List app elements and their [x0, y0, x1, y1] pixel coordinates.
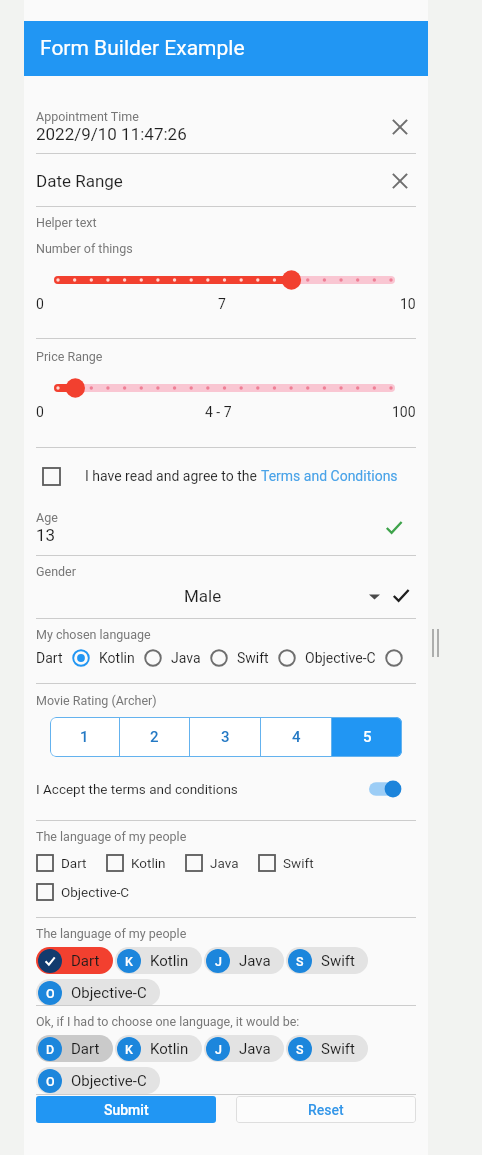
staticText: Java	[210, 855, 239, 871]
button[interactable]: Select Dart	[72, 649, 90, 667]
staticText: Reset	[308, 1102, 344, 1118]
button[interactable]: S	[286, 947, 368, 974]
staticText: Dart	[71, 1040, 100, 1058]
staticText: Java	[239, 1040, 271, 1058]
staticText: O	[46, 986, 55, 1001]
staticText: Swift	[321, 952, 355, 970]
staticText: 4	[292, 728, 301, 746]
staticText: Dart	[71, 952, 100, 970]
button[interactable]: O	[36, 979, 160, 1006]
staticText: Kotlin	[99, 650, 135, 666]
button[interactable]: I have read and agree to the	[36, 448, 416, 504]
staticText: Appointment Time	[36, 109, 139, 124]
button[interactable]: 5	[332, 717, 402, 757]
staticText: Kotlin	[150, 1040, 189, 1058]
staticText: Gender	[36, 564, 76, 579]
staticText: Swift	[237, 650, 269, 666]
staticText: I have read and agree to the	[85, 468, 261, 484]
staticText: Number of things	[36, 241, 133, 256]
button[interactable]: Clear date range	[384, 165, 416, 197]
staticText: Swift	[283, 855, 314, 871]
staticText: 100	[392, 404, 416, 420]
button[interactable]: J	[204, 947, 284, 974]
button[interactable]: 3	[190, 717, 260, 757]
button[interactable]: Resize panel	[430, 629, 440, 657]
button[interactable]: 2	[120, 717, 189, 757]
button[interactable]: S	[286, 1035, 368, 1062]
button[interactable]: Select Swift	[278, 649, 296, 667]
button[interactable]: Select Objective-C	[385, 649, 403, 667]
staticText: 10	[400, 296, 416, 312]
staticText: The language of my people	[36, 926, 187, 941]
staticText: 4 - 7	[205, 404, 232, 420]
staticText: Price Range	[36, 349, 103, 364]
staticText: J	[215, 1042, 222, 1057]
button[interactable]: Reset	[236, 1096, 416, 1123]
button[interactable]: 4	[261, 717, 331, 757]
button[interactable]: Dart	[36, 947, 113, 974]
button[interactable]: Submit	[36, 1096, 216, 1123]
button[interactable]: Java	[185, 854, 239, 872]
staticText: 3	[221, 728, 230, 746]
button[interactable]: Accept the terms and conditions toggle	[369, 777, 416, 801]
button[interactable]: Objective-C	[36, 883, 130, 901]
staticText: K	[125, 954, 133, 969]
staticText: 0	[36, 296, 44, 312]
staticText: Kotlin	[131, 855, 166, 871]
staticText: O	[46, 1074, 55, 1089]
staticText: 7	[218, 296, 226, 312]
staticText: Terms and Conditions	[261, 468, 398, 484]
button[interactable]: Swift	[258, 854, 314, 872]
staticText: 5	[363, 728, 372, 746]
staticText: Objective-C	[305, 650, 376, 666]
staticText: Movie Rating (Archer)	[36, 693, 157, 708]
button[interactable]: O	[36, 1067, 160, 1094]
staticText: Male	[184, 586, 222, 606]
staticText: 1	[80, 728, 89, 746]
button[interactable]: Form Builder Example	[24, 21, 428, 76]
staticText: S	[296, 954, 304, 969]
staticText: Swift	[321, 1040, 355, 1058]
button[interactable]: J	[204, 1035, 284, 1062]
staticText: Helper text	[36, 215, 97, 230]
staticText: Date Range	[36, 171, 123, 191]
button[interactable]: Clear appointment time	[384, 111, 416, 143]
button[interactable]: 1	[50, 717, 119, 757]
staticText: Submit	[104, 1102, 149, 1118]
staticText: S	[296, 1042, 304, 1057]
staticText: K	[125, 1042, 133, 1057]
button[interactable]: Dart	[36, 854, 87, 872]
staticText: 13	[36, 525, 56, 545]
button[interactable]: D	[36, 1035, 113, 1062]
staticText: I Accept the terms and conditions	[36, 781, 238, 797]
staticText: Objective-C	[71, 1072, 147, 1090]
staticText: Java	[239, 952, 271, 970]
button[interactable]: Select Kotlin	[144, 649, 162, 667]
staticText: Age	[36, 510, 58, 525]
staticText: D	[46, 1042, 55, 1057]
staticText: J	[215, 954, 222, 969]
staticText: Dart	[36, 650, 63, 666]
staticText: Form Builder Example	[40, 36, 245, 61]
staticText: Objective-C	[71, 984, 147, 1002]
button[interactable]: Kotlin	[106, 854, 166, 872]
staticText: Objective-C	[61, 884, 130, 900]
button[interactable]: K	[115, 947, 202, 974]
staticText: Kotlin	[150, 952, 189, 970]
staticText: Ok, if I had to choose one language, it …	[36, 1014, 300, 1029]
button[interactable]: K	[115, 1035, 202, 1062]
staticText: Java	[171, 650, 201, 666]
staticText: 2022/9/10 11:47:26	[36, 124, 187, 144]
button[interactable]: Select Java	[210, 649, 228, 667]
staticText: My chosen language	[36, 627, 151, 642]
staticText: 0	[36, 404, 44, 420]
staticText: The language of my people	[36, 829, 187, 844]
staticText: 2	[150, 728, 159, 746]
staticText: Dart	[61, 855, 87, 871]
